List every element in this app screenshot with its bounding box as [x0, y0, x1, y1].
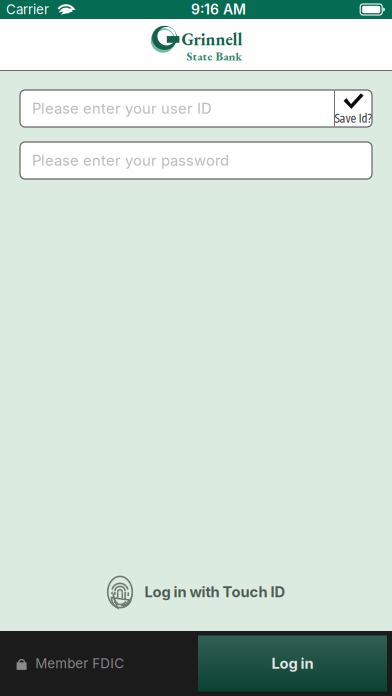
staticText: Grinnell	[181, 28, 242, 50]
button[interactable]: Log in	[198, 635, 387, 691]
staticText: Log in	[271, 655, 313, 672]
staticText: Log in with Touch ID	[144, 583, 285, 601]
button[interactable]: Member FDIC	[0, 631, 198, 696]
staticText: Please enter your password	[32, 152, 229, 169]
staticText: Please enter your user ID	[32, 100, 212, 117]
button[interactable]: Please enter your user ID	[20, 91, 334, 126]
staticText: Save Id?	[334, 111, 372, 125]
staticText: Member FDIC	[35, 655, 124, 671]
staticText: Carrier	[6, 1, 49, 17]
staticText: State Bank	[186, 48, 242, 64]
button[interactable]: Save Id	[335, 91, 372, 126]
staticText: 9:16 AM	[191, 1, 246, 18]
button[interactable]: Log in with Touch ID	[106, 575, 285, 609]
button[interactable]: Please enter your password	[20, 142, 372, 179]
